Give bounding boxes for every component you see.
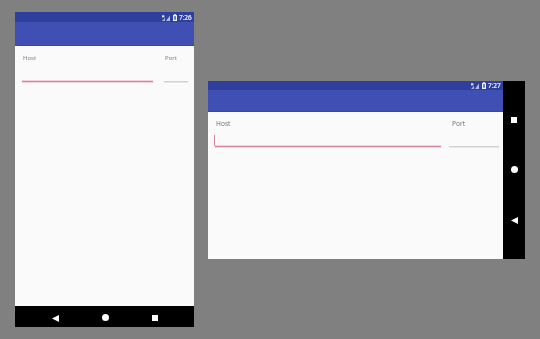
button[interactable]: Host [23, 54, 37, 62]
button[interactable]: Back [511, 217, 518, 224]
button[interactable]: Home [102, 314, 109, 321]
button[interactable]: Host [216, 119, 231, 128]
button[interactable]: Home [511, 166, 518, 173]
button[interactable]: Port [452, 119, 466, 128]
staticText: 7:26 [179, 13, 192, 22]
button[interactable]: Port [165, 54, 177, 62]
staticText: 7:27 [488, 81, 501, 90]
button[interactable]: Back [52, 315, 59, 322]
